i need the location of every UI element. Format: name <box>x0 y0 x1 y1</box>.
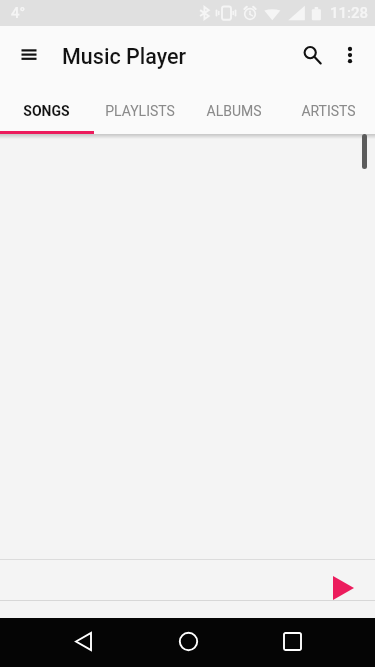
staticText: 11:28 <box>330 4 369 22</box>
staticText: 4° <box>11 4 26 22</box>
staticText: Music Player <box>62 44 187 69</box>
button[interactable]: PLAYLISTS <box>93 82 187 134</box>
staticText: SONGS <box>23 103 70 119</box>
staticText: PLAYLISTS <box>105 103 175 119</box>
button[interactable]: ALBUMS <box>187 82 281 134</box>
button[interactable]: Back <box>59 618 107 666</box>
staticText: ARTISTS <box>301 103 356 119</box>
button[interactable]: SONGS <box>0 82 93 134</box>
button[interactable]: Recent apps <box>268 618 316 666</box>
button[interactable]: Search <box>286 30 334 78</box>
button[interactable]: More options <box>326 30 374 78</box>
staticText: ALBUMS <box>206 103 262 119</box>
button[interactable]: Play <box>327 571 359 603</box>
button[interactable]: ARTISTS <box>281 82 375 134</box>
button[interactable]: Open navigation drawer <box>5 30 53 78</box>
button[interactable]: Home <box>164 618 212 666</box>
